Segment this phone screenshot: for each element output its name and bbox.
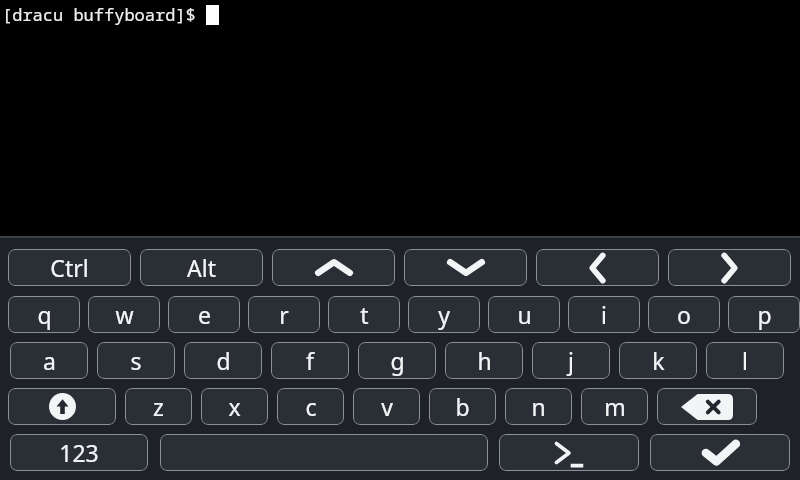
staticText: o bbox=[677, 299, 691, 330]
button[interactable]: g bbox=[358, 342, 436, 379]
button[interactable]: e bbox=[168, 296, 240, 333]
button[interactable]: h bbox=[445, 342, 523, 379]
staticText: x bbox=[228, 391, 241, 422]
button[interactable]: p bbox=[728, 296, 800, 333]
staticText: a bbox=[43, 345, 56, 376]
button[interactable]: y bbox=[408, 296, 480, 333]
staticText: v bbox=[381, 391, 393, 422]
button[interactable]: i bbox=[568, 296, 640, 333]
button[interactable]: Space bbox=[160, 434, 488, 471]
button[interactable]: Command prompt bbox=[499, 434, 639, 471]
staticText: [dracu buffyboard]$ bbox=[2, 3, 206, 26]
button[interactable]: Left bbox=[536, 249, 659, 286]
staticText: j bbox=[568, 345, 574, 376]
staticText: Ctrl bbox=[50, 252, 89, 283]
button[interactable]: l bbox=[706, 342, 784, 379]
staticText: Alt bbox=[187, 252, 216, 283]
staticText: g bbox=[390, 345, 405, 376]
button[interactable]: o bbox=[648, 296, 720, 333]
button[interactable]: a bbox=[10, 342, 88, 379]
button[interactable]: Alt bbox=[140, 249, 263, 286]
button[interactable]: q bbox=[8, 296, 80, 333]
button[interactable]: 123 bbox=[10, 434, 148, 471]
button[interactable]: m bbox=[581, 388, 648, 425]
staticText: f bbox=[306, 345, 314, 376]
button[interactable]: Shift bbox=[8, 388, 116, 425]
staticText: u bbox=[517, 299, 532, 330]
button[interactable]: w bbox=[88, 296, 160, 333]
button[interactable]: k bbox=[619, 342, 697, 379]
staticText: y bbox=[438, 299, 450, 330]
staticText: s bbox=[130, 345, 142, 376]
staticText: p bbox=[757, 299, 772, 330]
staticText: d bbox=[216, 345, 231, 376]
button[interactable]: s bbox=[97, 342, 175, 379]
staticText: e bbox=[198, 299, 211, 330]
staticText: z bbox=[153, 391, 164, 422]
staticText: m bbox=[604, 391, 626, 422]
button[interactable]: u bbox=[488, 296, 560, 333]
staticText: q bbox=[37, 299, 52, 330]
button[interactable]: z bbox=[125, 388, 192, 425]
button[interactable]: Right bbox=[668, 249, 791, 286]
button[interactable]: n bbox=[505, 388, 572, 425]
staticText: b bbox=[455, 391, 470, 422]
button[interactable]: x bbox=[201, 388, 268, 425]
button[interactable]: v bbox=[353, 388, 420, 425]
staticText: i bbox=[601, 299, 607, 330]
button[interactable]: Down bbox=[404, 249, 527, 286]
button[interactable]: c bbox=[277, 388, 344, 425]
staticText: w bbox=[115, 299, 134, 330]
staticText: c bbox=[305, 391, 317, 422]
button[interactable]: f bbox=[271, 342, 349, 379]
staticText: r bbox=[279, 299, 289, 330]
staticText: l bbox=[742, 345, 748, 376]
button[interactable]: Enter bbox=[650, 434, 790, 471]
button[interactable]: d bbox=[184, 342, 262, 379]
button[interactable]: j bbox=[532, 342, 610, 379]
button[interactable]: r bbox=[248, 296, 320, 333]
button[interactable]: Ctrl bbox=[8, 249, 131, 286]
button[interactable]: b bbox=[429, 388, 496, 425]
button[interactable]: t bbox=[328, 296, 400, 333]
button[interactable]: Backspace bbox=[657, 388, 757, 425]
staticText: k bbox=[652, 345, 665, 376]
button[interactable]: Up bbox=[272, 249, 395, 286]
staticText: n bbox=[531, 391, 546, 422]
staticText: 123 bbox=[59, 437, 99, 468]
staticText: t bbox=[360, 299, 369, 330]
staticText: h bbox=[477, 345, 492, 376]
